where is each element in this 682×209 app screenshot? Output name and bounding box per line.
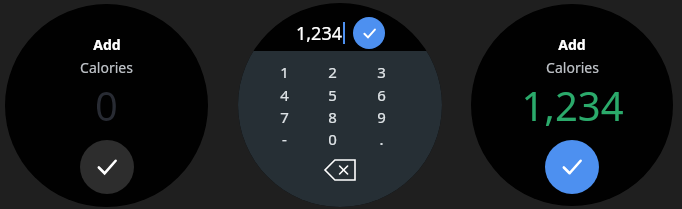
staticText: 1,234	[521, 78, 624, 132]
staticText: 3	[377, 62, 386, 82]
button[interactable]: 9	[365, 106, 397, 128]
button[interactable]: 3	[365, 61, 397, 83]
staticText: Calories	[546, 58, 599, 77]
button[interactable]: Backspace	[320, 157, 360, 183]
staticText: 5	[328, 85, 337, 105]
staticText: 1	[280, 62, 289, 82]
staticText: -	[282, 129, 287, 149]
button[interactable]: Confirm	[80, 140, 134, 194]
staticText: .	[379, 129, 384, 149]
button[interactable]: .	[365, 128, 397, 150]
staticText: 8	[328, 107, 337, 127]
button[interactable]: 8	[316, 106, 348, 128]
staticText: 0	[328, 129, 337, 149]
button[interactable]: Confirm	[545, 140, 599, 194]
button[interactable]: 5	[316, 84, 348, 106]
button[interactable]: -	[268, 128, 300, 150]
button[interactable]: 4	[268, 84, 300, 106]
staticText: 1,234	[296, 21, 343, 46]
button[interactable]: 1	[268, 61, 300, 83]
staticText: Add	[558, 35, 586, 54]
staticText: 2	[328, 62, 337, 82]
staticText: 9	[377, 107, 386, 127]
button[interactable]: 2	[316, 61, 348, 83]
staticText: Calories	[80, 58, 133, 77]
staticText: 7	[280, 107, 289, 127]
button[interactable]: 0	[316, 128, 348, 150]
staticText: 6	[377, 85, 386, 105]
button[interactable]: 7	[268, 106, 300, 128]
staticText: Add	[93, 35, 121, 54]
staticText: 0	[95, 78, 118, 132]
staticText: 4	[280, 85, 289, 105]
button[interactable]: 6	[365, 84, 397, 106]
button[interactable]: Confirm	[353, 17, 385, 49]
